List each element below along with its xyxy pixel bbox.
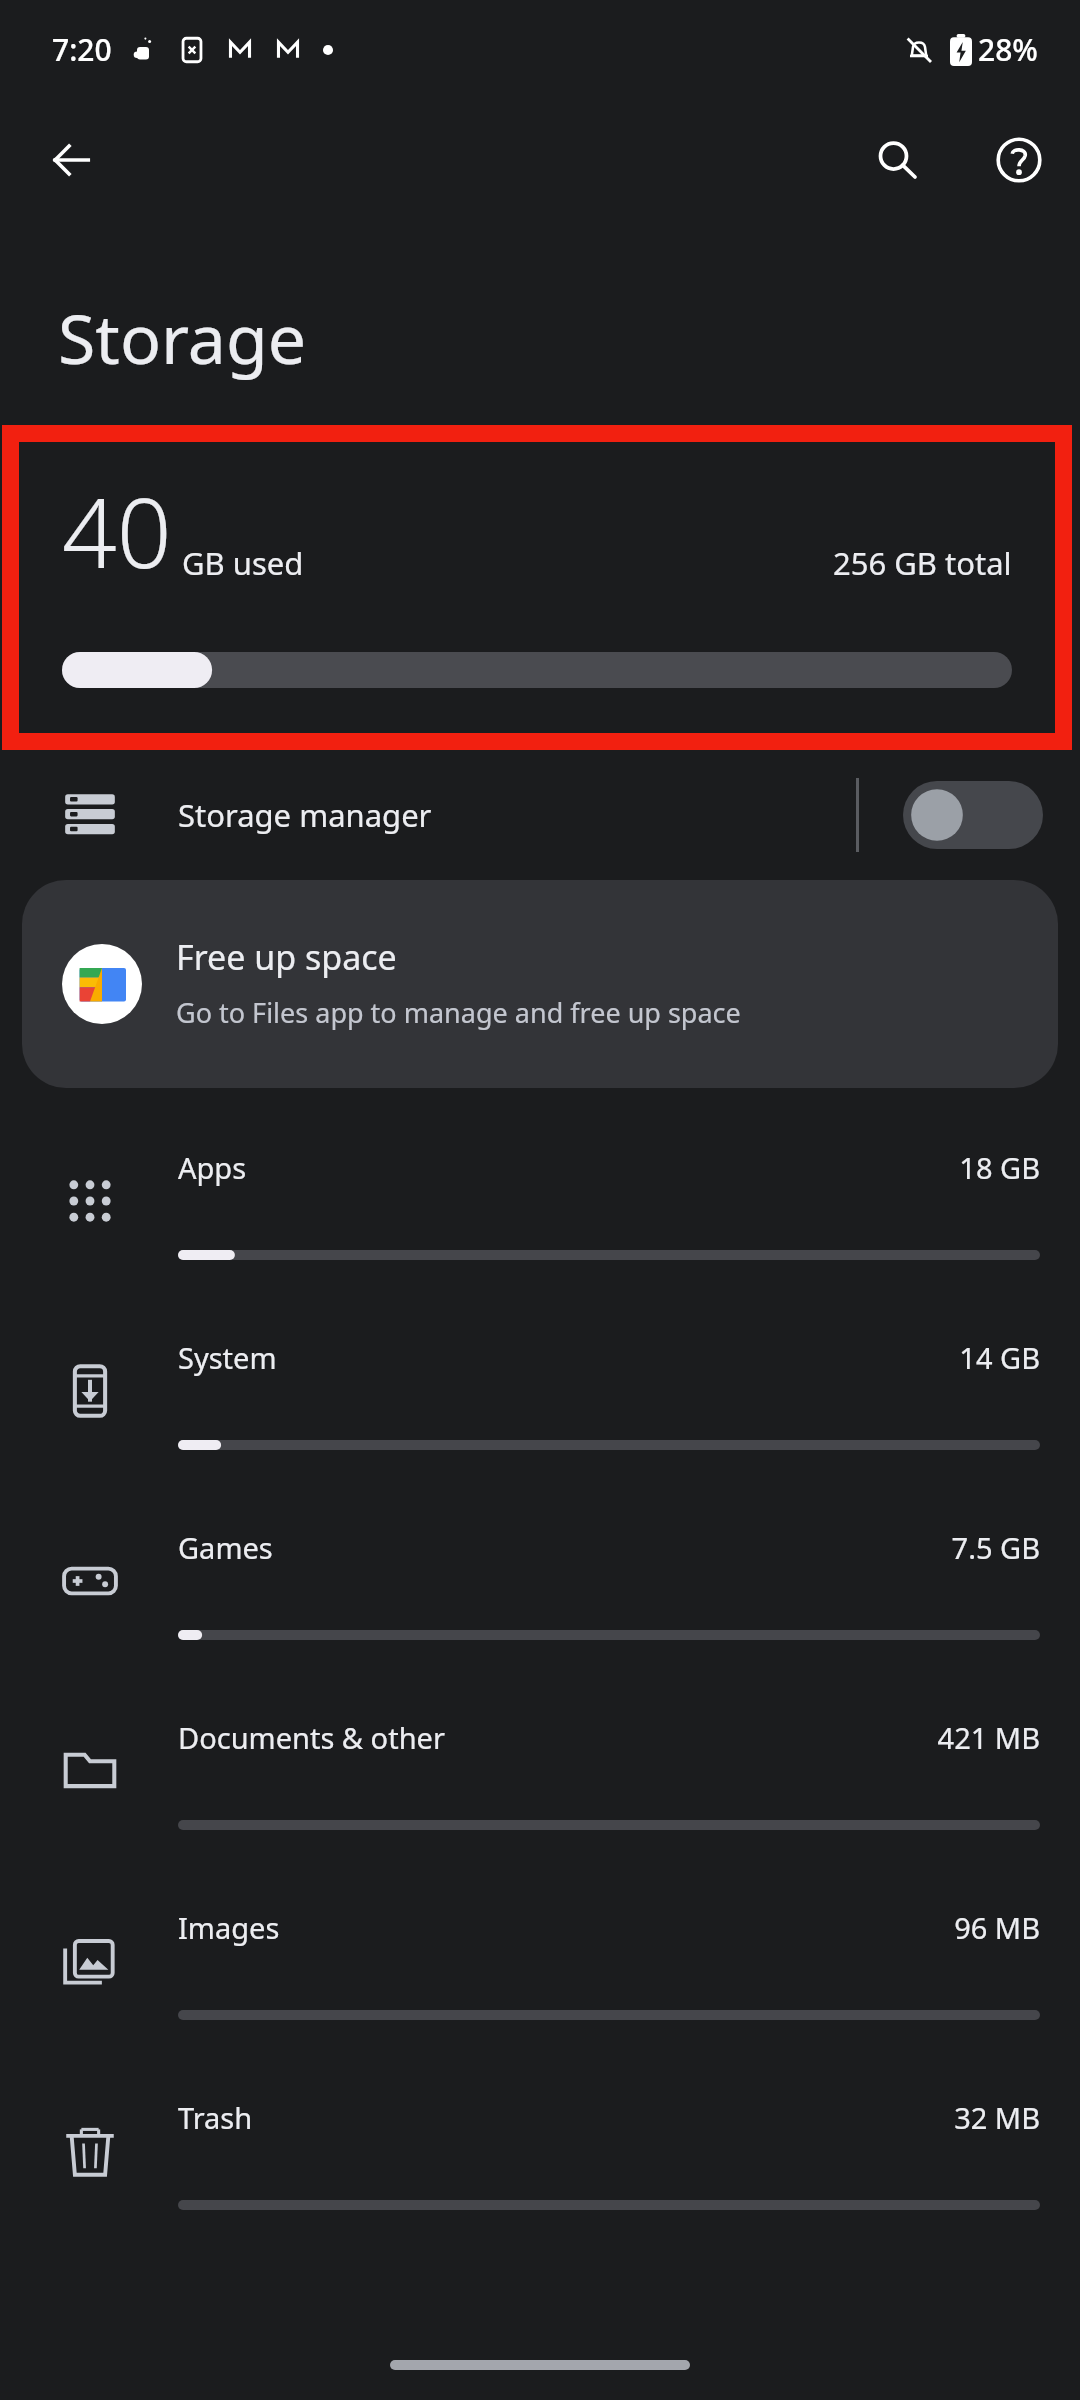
staticText: Go to Files app to manage and free up sp…: [176, 994, 741, 1031]
staticText: Free up space: [176, 934, 397, 980]
button[interactable]: Storage manager: [0, 750, 1080, 880]
button[interactable]: Images: [0, 1886, 1080, 2076]
button[interactable]: Games: [0, 1506, 1080, 1696]
staticText: 14 GB: [959, 1338, 1040, 1377]
staticText: Storage manager: [178, 794, 432, 836]
staticText: 28%: [978, 29, 1038, 70]
button[interactable]: Documents & other: [0, 1696, 1080, 1886]
button[interactable]: System: [0, 1316, 1080, 1506]
staticText: Apps: [178, 1148, 959, 1187]
staticText: Storage: [58, 291, 307, 384]
staticText: Trash: [178, 2098, 954, 2137]
staticText: 18 GB: [959, 1148, 1040, 1187]
staticText: Images: [178, 1908, 954, 1947]
staticText: Documents & other: [178, 1718, 937, 1757]
button[interactable]: Search: [850, 113, 944, 207]
button[interactable]: Free up space: [22, 880, 1058, 1088]
staticText: GB used: [182, 542, 304, 584]
staticText: System: [178, 1338, 959, 1377]
staticText: 96 MB: [954, 1908, 1040, 1947]
button[interactable]: Help: [972, 113, 1066, 207]
button[interactable]: Trash: [0, 2076, 1080, 2266]
staticText: 256 GB total: [833, 542, 1012, 584]
staticText: 421 MB: [937, 1718, 1040, 1757]
button[interactable]: Apps: [0, 1126, 1080, 1316]
staticText: 40: [62, 465, 172, 596]
button[interactable]: Back: [24, 113, 118, 207]
staticText: 7:20: [52, 29, 112, 70]
staticText: Games: [178, 1528, 951, 1567]
button[interactable]: Storage manager toggle: [900, 770, 1046, 860]
staticText: 7.5 GB: [951, 1528, 1040, 1567]
staticText: 32 MB: [954, 2098, 1040, 2137]
